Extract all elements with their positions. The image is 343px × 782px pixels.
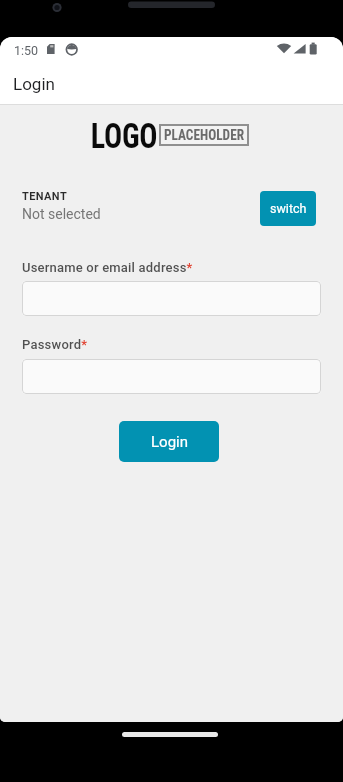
button[interactable] bbox=[22, 281, 321, 316]
button[interactable] bbox=[22, 359, 321, 394]
staticText: Login bbox=[151, 433, 188, 451]
staticText: PLACEHOLDER bbox=[157, 126, 251, 144]
staticText: Password* bbox=[22, 337, 88, 352]
staticText: 1:50 bbox=[14, 43, 39, 58]
staticText: Login bbox=[13, 74, 55, 94]
button[interactable]: Login bbox=[119, 421, 219, 462]
staticText: TENANT bbox=[22, 190, 68, 203]
staticText: switch bbox=[270, 201, 307, 216]
staticText: Username or email address* bbox=[22, 260, 193, 275]
staticText: LOGO bbox=[72, 116, 176, 150]
button[interactable]: switch bbox=[260, 191, 316, 226]
staticText: Not selected bbox=[22, 206, 101, 222]
